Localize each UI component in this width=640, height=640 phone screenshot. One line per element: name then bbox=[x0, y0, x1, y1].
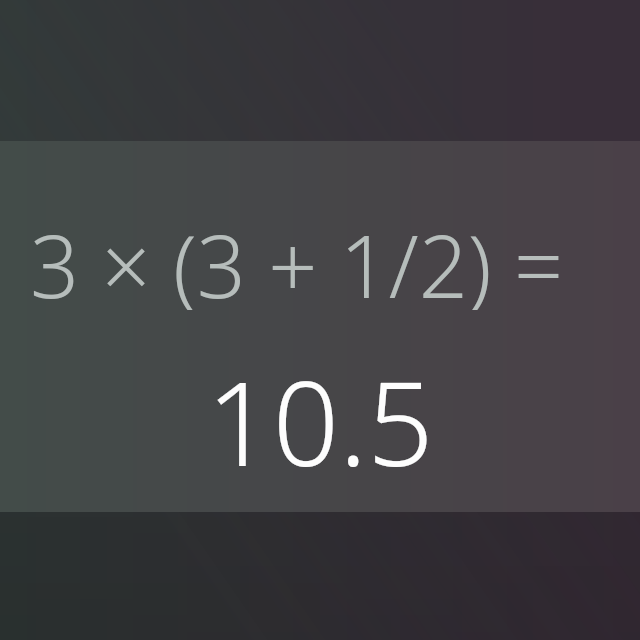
button[interactable]: 10.5 bbox=[0, 342, 640, 472]
staticText: 3 × (3 + 1/2) = bbox=[30, 206, 586, 310]
staticText: 10.5 bbox=[206, 342, 434, 472]
button[interactable]: 3 × (3 + 1/2) = bbox=[30, 206, 640, 310]
button[interactable] bbox=[0, 141, 640, 512]
